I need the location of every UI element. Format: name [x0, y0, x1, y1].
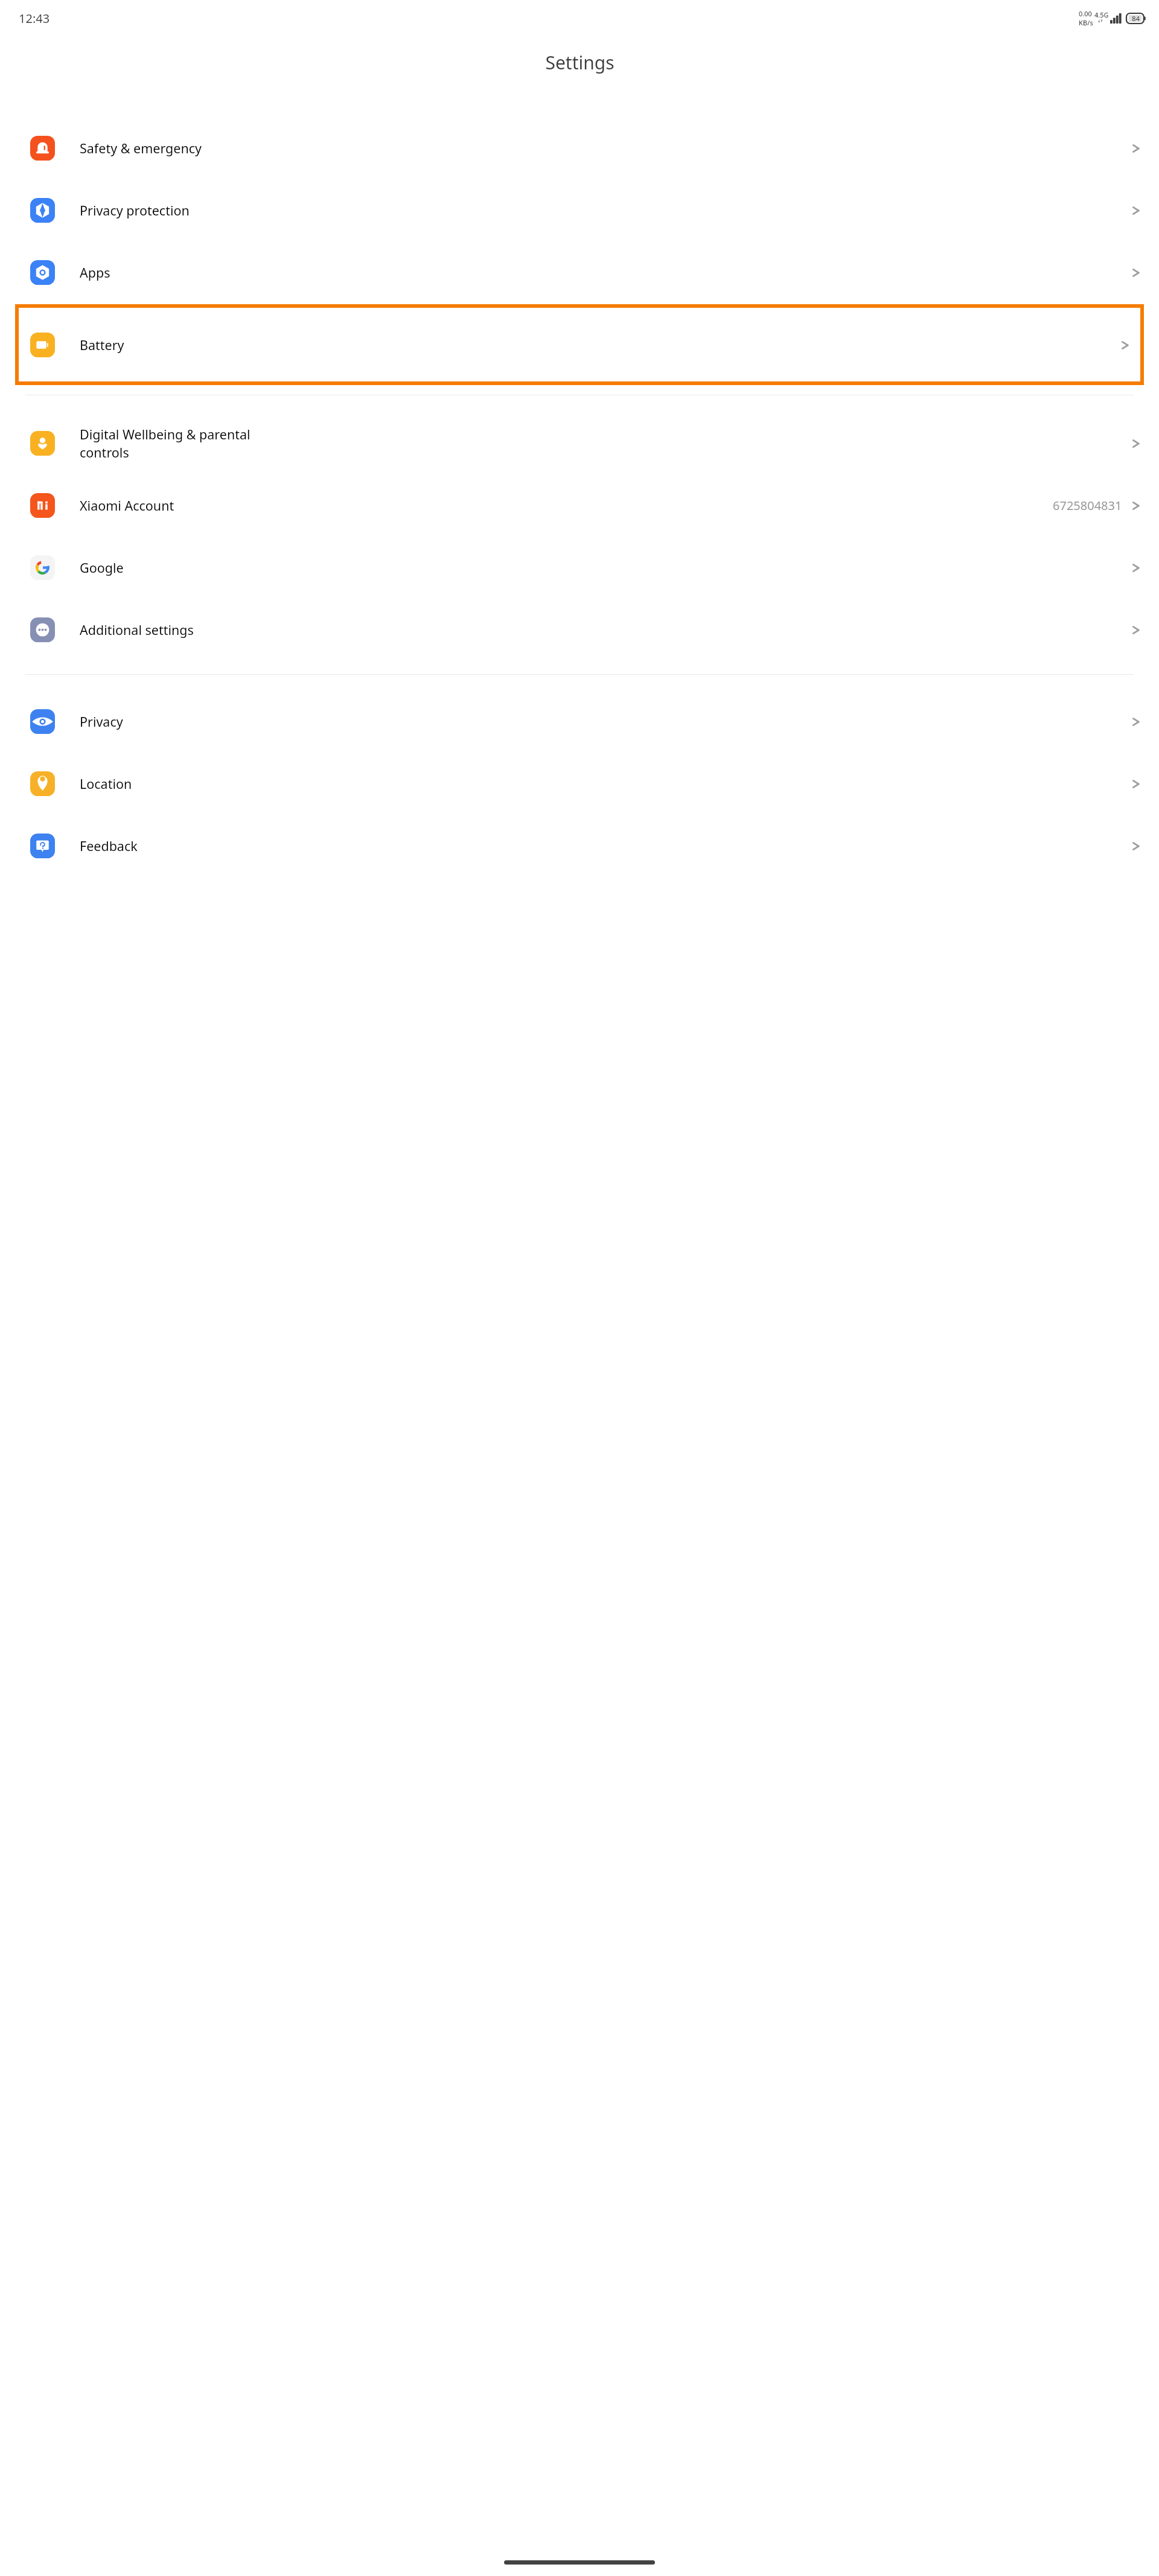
button[interactable]: Privacy — [0, 690, 1159, 753]
staticText: 6725804831 — [1053, 497, 1122, 514]
staticText: Feedback — [80, 837, 1128, 855]
button[interactable]: Apps — [0, 241, 1159, 304]
staticText: Xiaomi Account — [80, 497, 1053, 514]
staticText: Privacy protection — [80, 202, 1128, 219]
staticText: 0.00 — [1079, 9, 1092, 18]
staticText: Safety & emergency — [80, 139, 1128, 157]
staticText: Google — [80, 559, 1128, 576]
staticText: Additional settings — [80, 621, 1128, 639]
staticText: 84 — [1132, 14, 1140, 24]
button[interactable]: Google — [0, 537, 1159, 599]
staticText: Battery — [80, 336, 1117, 354]
staticText: Settings — [545, 50, 615, 75]
staticText: 4.5G — [1094, 10, 1109, 19]
button[interactable]: Feedback — [0, 815, 1159, 877]
button[interactable]: Safety & emergency — [0, 117, 1159, 179]
staticText: KB/s — [1079, 18, 1093, 27]
button[interactable]: Privacy protection — [0, 179, 1159, 241]
button[interactable]: Battery — [19, 308, 1140, 381]
button[interactable]: Xiaomi Account — [0, 474, 1159, 537]
button[interactable]: Digital Wellbeing & parental controls — [0, 412, 1159, 474]
staticText: Digital Wellbeing & parental controls — [80, 426, 1128, 461]
button[interactable]: Additional settings — [0, 599, 1159, 661]
staticText: Privacy — [80, 713, 1128, 730]
staticText: Apps — [80, 264, 1128, 281]
staticText: 12:43 — [19, 10, 50, 27]
button[interactable]: Location — [0, 753, 1159, 815]
staticText: Location — [80, 775, 1128, 792]
